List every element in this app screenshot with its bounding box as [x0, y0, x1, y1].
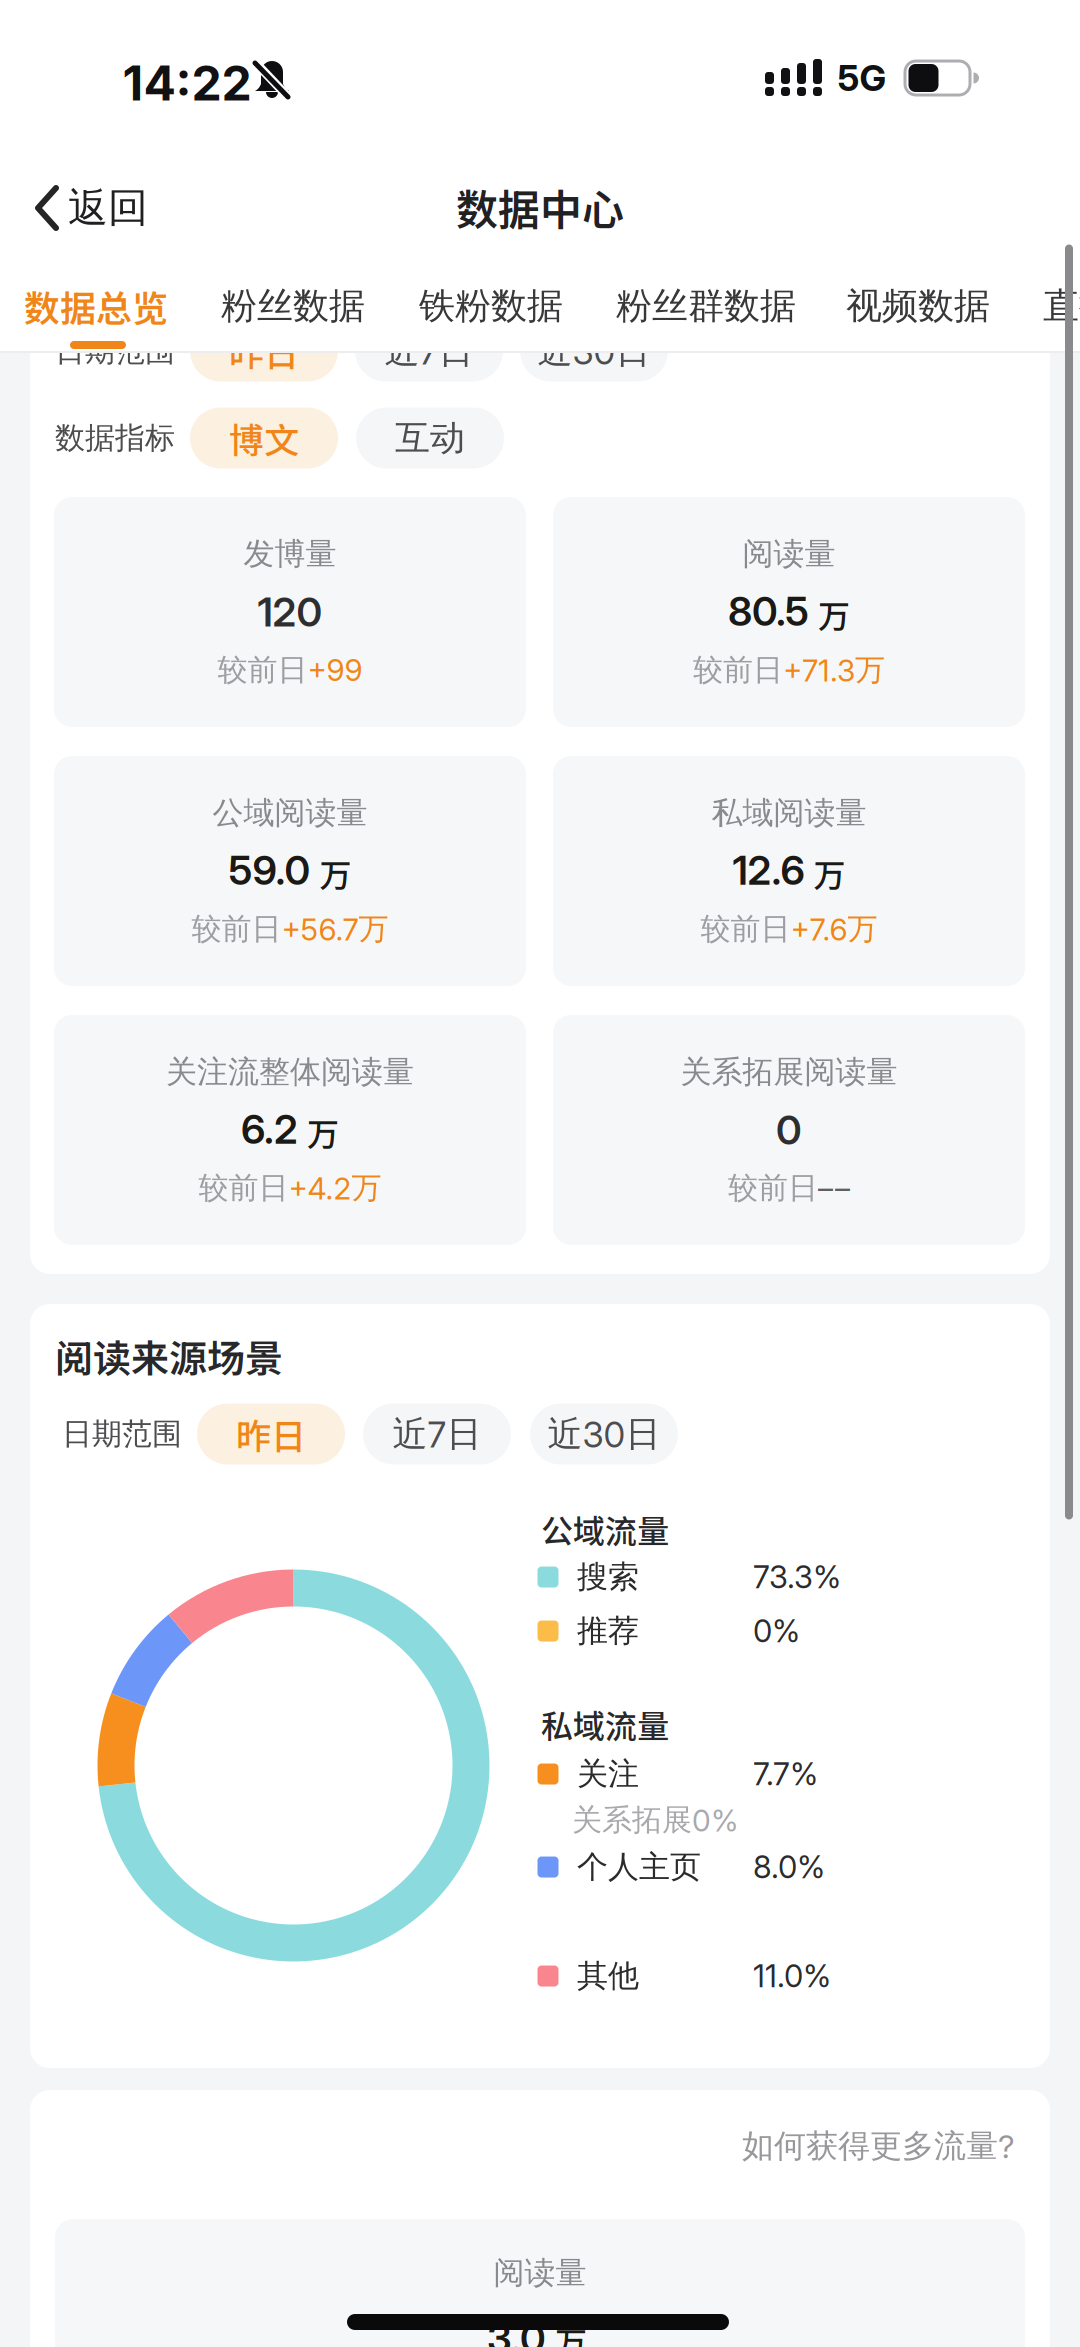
staticText: 铁粉数据 — [419, 283, 563, 329]
staticText: 推荐 — [577, 1611, 639, 1651]
button[interactable]: 数据总览 — [24, 280, 168, 332]
staticText: 较前日 — [728, 1169, 818, 1207]
staticText: 近30日 — [537, 329, 650, 373]
staticText: 5G — [837, 56, 886, 100]
staticText: 阅读量 — [742, 534, 835, 574]
staticText: 博文 — [229, 413, 299, 463]
staticText: 近30日 — [547, 1412, 660, 1456]
staticText: 日期范围 — [55, 332, 175, 370]
staticText: 直播数据 — [1043, 283, 1080, 329]
staticText: 如何获得更多流量? — [742, 2126, 1015, 2166]
staticText: 0% — [753, 1612, 800, 1650]
button[interactable]: 昨日 — [190, 320, 338, 381]
staticText: +99 — [307, 652, 362, 688]
button[interactable]: 直播数据 — [1043, 283, 1080, 329]
staticText: +56.7万 — [281, 910, 388, 948]
staticText: 12.6 万 — [732, 846, 845, 895]
staticText: +4.2万 — [288, 1169, 381, 1207]
staticText: 私域流量 — [541, 1701, 669, 1747]
staticText: 0 — [776, 1106, 802, 1154]
staticText: 数据总览 — [24, 280, 168, 332]
button[interactable]: 近7日 — [363, 1403, 511, 1464]
staticText: 73.3% — [753, 1558, 841, 1596]
button[interactable]: 粉丝数据 — [221, 283, 365, 329]
staticText: 私域阅读量 — [711, 793, 866, 833]
staticText: 粉丝数据 — [221, 283, 365, 329]
button[interactable]: 返回 — [34, 183, 148, 233]
staticText: 近7日 — [392, 1412, 481, 1456]
staticText: 昨日 — [229, 326, 299, 376]
button[interactable]: 博文 — [190, 407, 338, 468]
staticText: 较前日 — [693, 651, 783, 689]
staticText: 120 — [257, 588, 322, 636]
staticText: 8.0% — [753, 1848, 825, 1886]
staticText: 11.0% — [753, 1957, 831, 1995]
staticText: 搜索 — [577, 1557, 639, 1597]
button[interactable]: 昨日 — [197, 1403, 345, 1464]
button[interactable]: 近30日 — [520, 320, 668, 381]
staticText: +71.3万 — [783, 651, 885, 689]
staticText: 数据中心 — [456, 177, 624, 237]
button[interactable]: 近7日 — [355, 320, 503, 381]
staticText: 阅读来源场景 — [55, 1328, 283, 1383]
staticText: 昨日 — [236, 1409, 306, 1459]
staticText: 数据指标 — [55, 419, 175, 457]
staticText: 日期范围 — [62, 1415, 182, 1453]
staticText: 视频数据 — [846, 283, 990, 329]
button[interactable]: 粉丝群数据 — [616, 283, 796, 329]
staticText: 粉丝群数据 — [616, 283, 796, 329]
staticText: 关注流整体阅读量 — [166, 1052, 414, 1092]
staticText: 关系拓展0% — [572, 1801, 738, 1839]
staticText: 较前日 — [191, 910, 281, 948]
staticText: 返回 — [68, 183, 148, 233]
staticText: 80.5 万 — [728, 587, 850, 636]
button[interactable]: 如何获得更多流量? — [615, 2121, 1015, 2171]
staticText: 关注 — [577, 1754, 639, 1794]
staticText: 关系拓展阅读量 — [680, 1052, 897, 1092]
staticText: 14:22 — [122, 54, 251, 112]
staticText: 6.2 万 — [241, 1105, 339, 1154]
staticText: – – — [818, 1170, 850, 1206]
staticText: 59.0 万 — [228, 846, 351, 895]
staticText: 3.0 万 — [487, 2314, 587, 2347]
staticText: 阅读量 — [493, 2253, 586, 2293]
staticText: 较前日 — [217, 651, 307, 689]
staticText: 公域阅读量 — [212, 793, 367, 833]
staticText: 较前日 — [700, 910, 790, 948]
button[interactable]: 视频数据 — [846, 283, 990, 329]
staticText: 近7日 — [384, 329, 473, 373]
button[interactable]: 互动 — [356, 407, 504, 468]
staticText: +7.6万 — [790, 910, 877, 948]
button[interactable]: 铁粉数据 — [419, 283, 563, 329]
staticText: 互动 — [395, 416, 465, 460]
staticText: 7.7% — [753, 1755, 818, 1793]
staticText: 公域流量 — [541, 1506, 669, 1552]
staticText: 较前日 — [198, 1169, 288, 1207]
staticText: 其他 — [577, 1956, 639, 1996]
staticText: 个人主页 — [577, 1847, 701, 1887]
staticText: 发博量 — [243, 534, 336, 574]
button[interactable]: 近30日 — [530, 1403, 678, 1464]
